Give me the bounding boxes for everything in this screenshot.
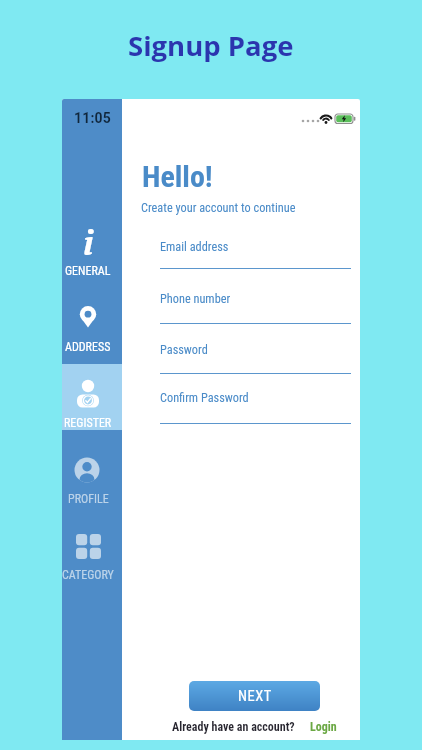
- staticText: Already have an account?: [172, 720, 295, 734]
- button[interactable]: Login: [310, 720, 337, 734]
- staticText: Phone number: [160, 292, 231, 306]
- button[interactable]: [62, 293, 122, 355]
- staticText: ADDRESS: [65, 340, 111, 354]
- staticText: NEXT: [238, 688, 272, 705]
- button[interactable]: NEXT: [189, 681, 320, 711]
- staticText: Login: [310, 720, 337, 734]
- button[interactable]: [62, 521, 122, 583]
- staticText: CATEGORY: [62, 568, 114, 582]
- button[interactable]: [62, 217, 122, 279]
- staticText: PROFILE: [68, 492, 109, 506]
- staticText: 11:05: [74, 110, 112, 126]
- staticText: Confirm Password: [160, 391, 249, 405]
- staticText: REGISTER: [64, 416, 112, 430]
- staticText: Signup Page: [128, 27, 294, 64]
- staticText: Hello!: [142, 159, 213, 194]
- staticText: GENERAL: [65, 264, 111, 278]
- staticText: Create your account to continue: [141, 201, 296, 215]
- staticText: Email address: [160, 240, 229, 254]
- button[interactable]: [62, 364, 122, 430]
- button[interactable]: [62, 445, 122, 507]
- staticText: i: [83, 219, 94, 261]
- staticText: Password: [160, 343, 208, 357]
